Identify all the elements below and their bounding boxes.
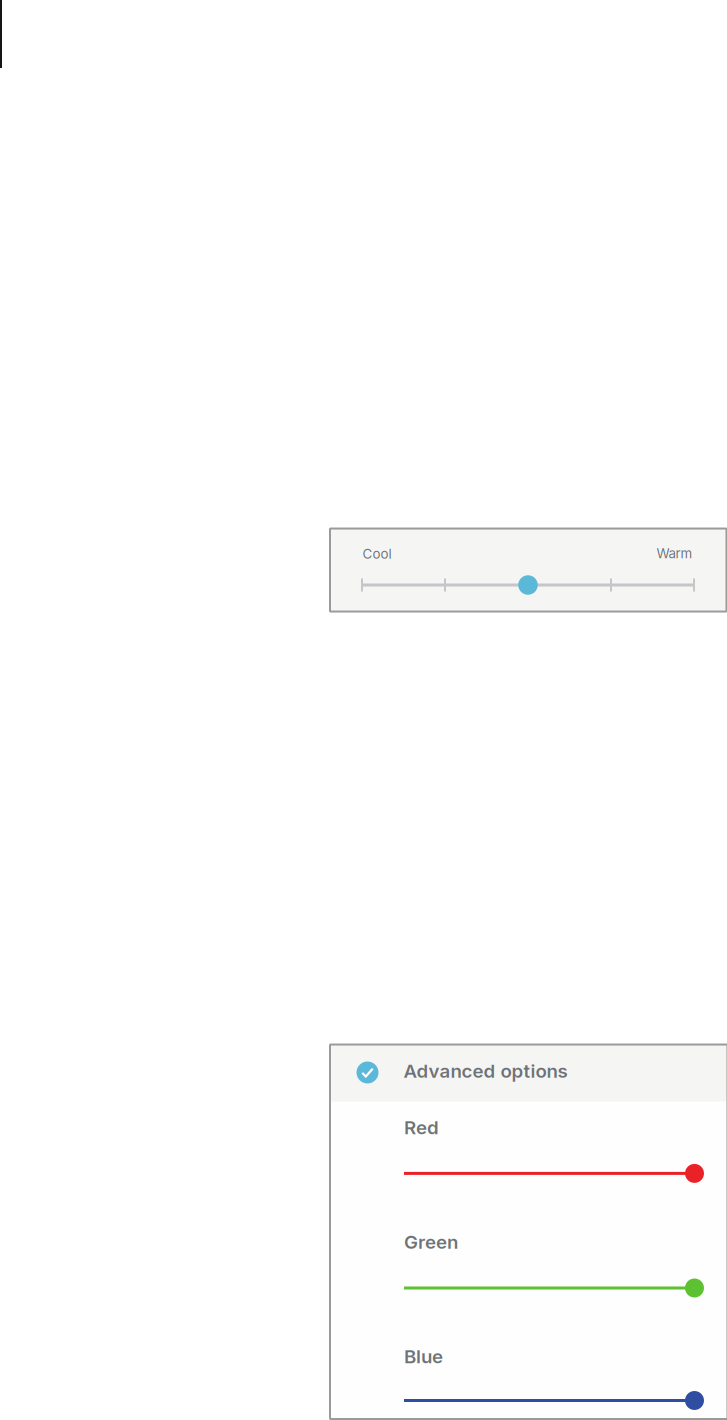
button[interactable]: Green level	[404, 1231, 714, 1302]
button[interactable]: Blue level	[404, 1343, 714, 1414]
button[interactable]: Colour temperature	[352, 572, 704, 598]
button[interactable]: Advanced options	[330, 1044, 727, 1101]
staticText: Green	[404, 1231, 458, 1253]
staticText: Warm	[656, 545, 692, 561]
button[interactable]: Red level	[404, 1116, 714, 1187]
staticText: Cool	[362, 546, 391, 562]
staticText: Blue	[404, 1345, 443, 1368]
staticText: Red	[404, 1116, 439, 1139]
staticText: Advanced options	[403, 1060, 567, 1082]
